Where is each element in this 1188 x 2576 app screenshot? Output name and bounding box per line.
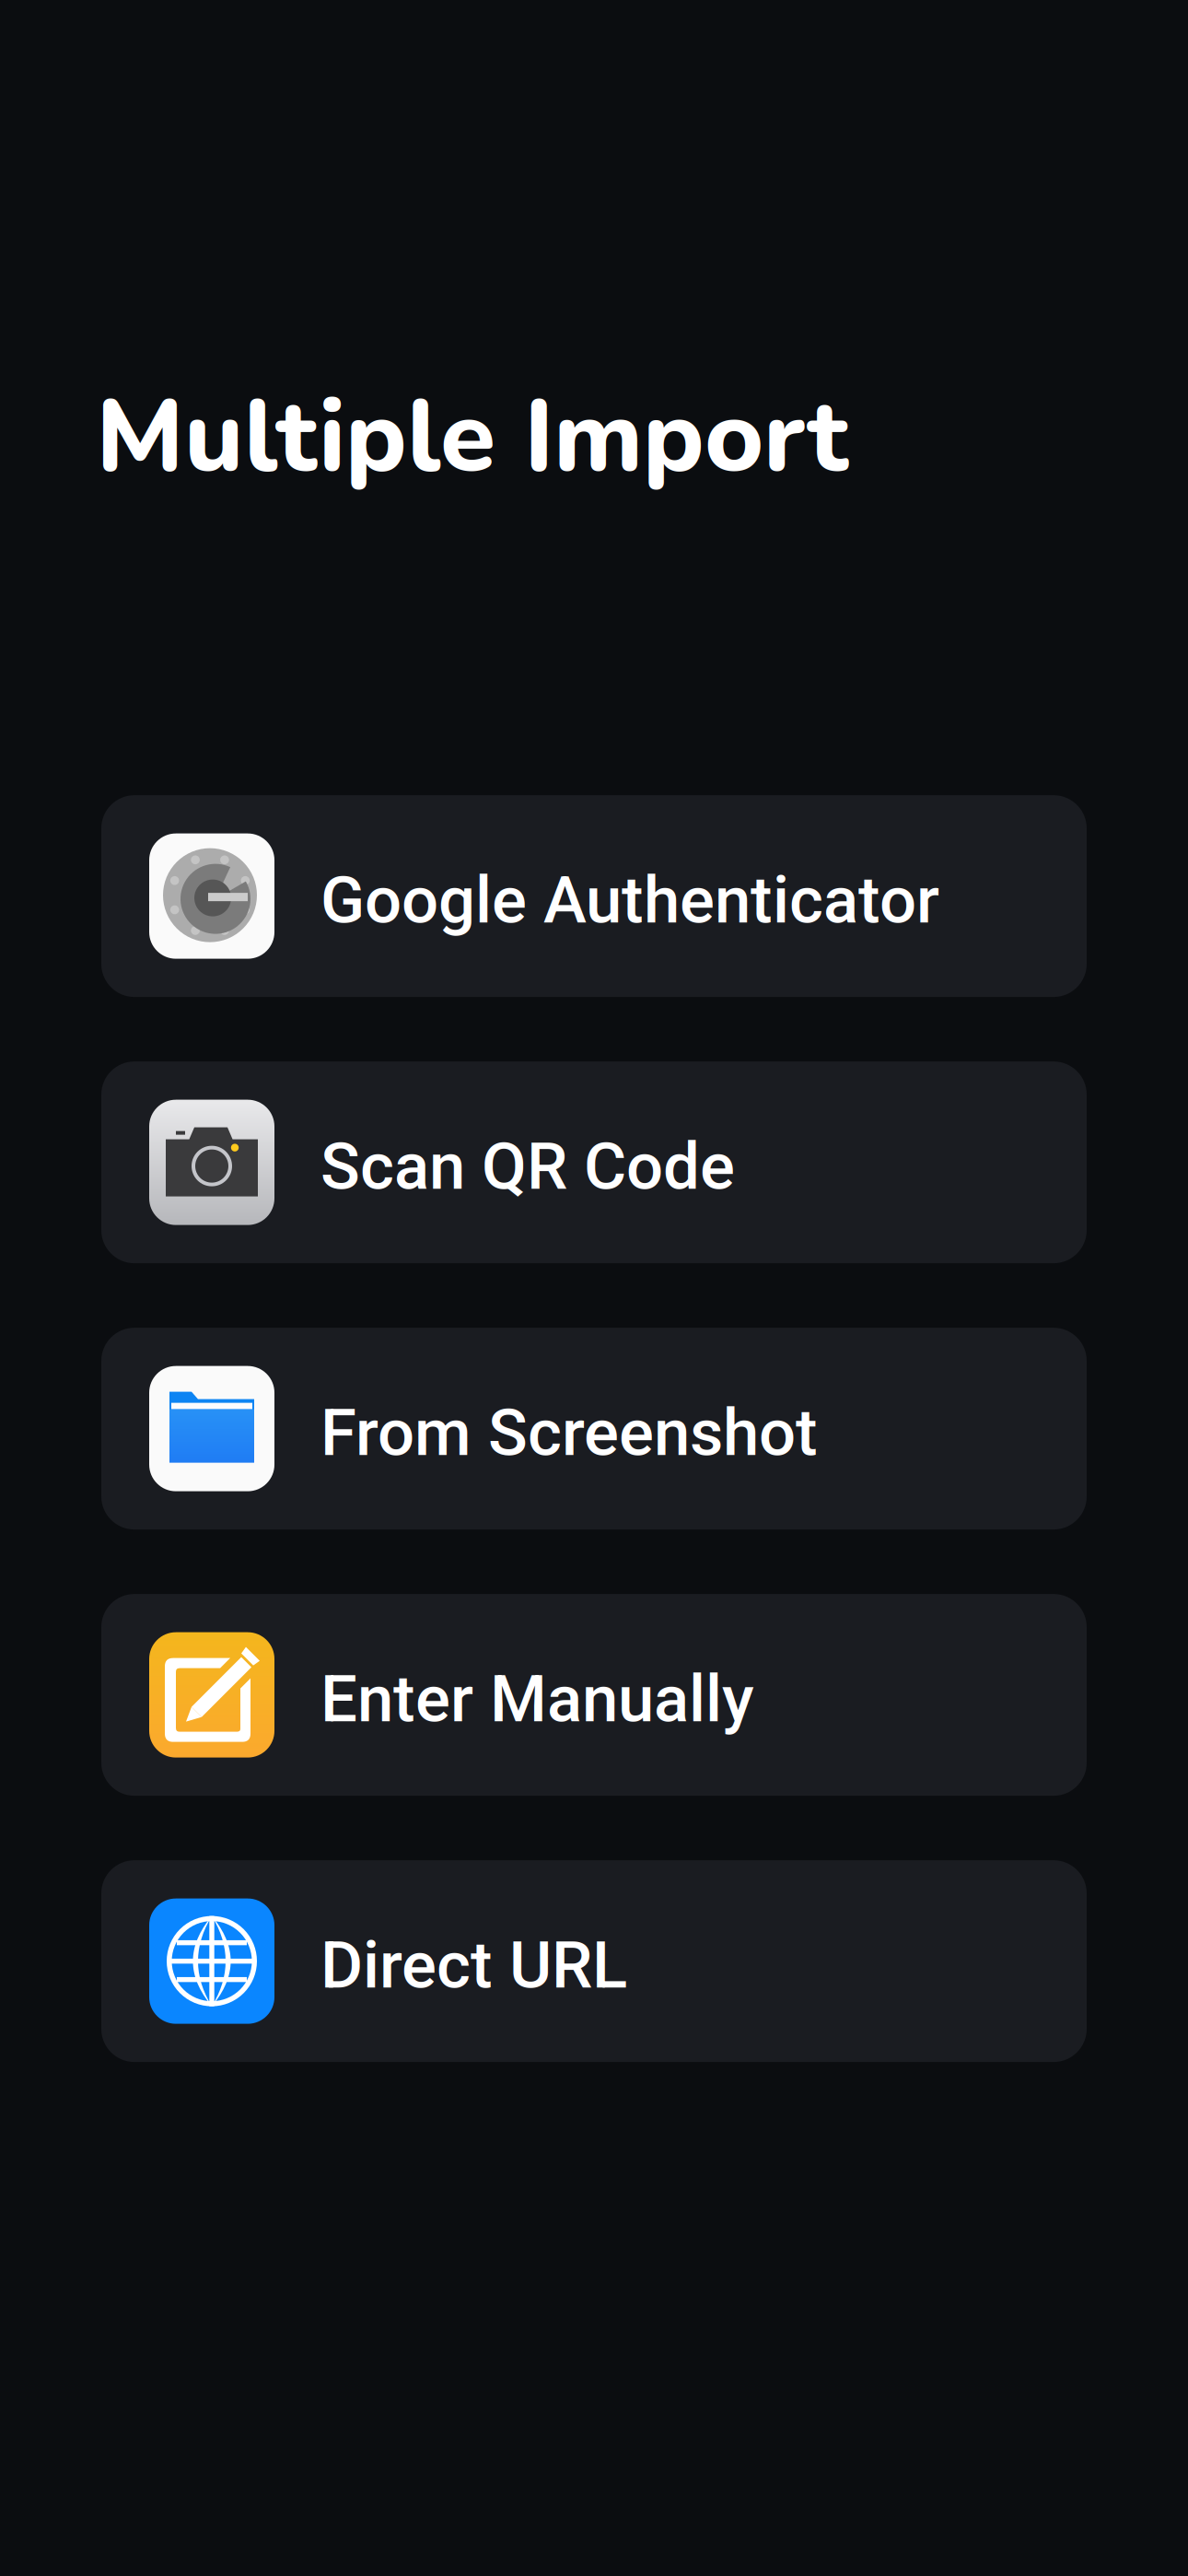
- staticText: Scan QR Code: [320, 1128, 735, 1205]
- button[interactable]: From Screenshot: [101, 1328, 1087, 1529]
- staticText: From Screenshot: [320, 1395, 818, 1471]
- button[interactable]: Enter Manually: [101, 1594, 1087, 1796]
- button[interactable]: Google Authenticator: [101, 795, 1087, 997]
- staticText: Direct URL: [320, 1927, 627, 2003]
- staticText: Google Authenticator: [320, 862, 939, 938]
- button[interactable]: Direct URL: [101, 1860, 1087, 2062]
- staticText: Enter Manually: [320, 1661, 754, 1737]
- button[interactable]: Scan QR Code: [101, 1061, 1087, 1263]
- staticText: Multiple Import: [96, 369, 848, 506]
